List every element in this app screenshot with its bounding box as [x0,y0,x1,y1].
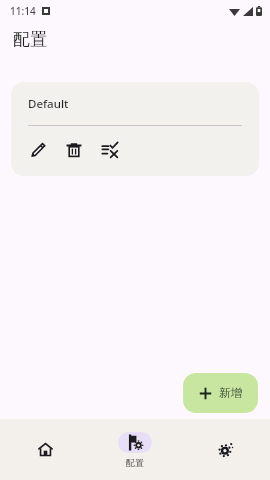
button[interactable]: Settings [180,439,270,460]
staticText: 配置 [13,29,47,50]
button[interactable]: Delete [61,137,87,163]
button[interactable]: 配置 [90,432,180,468]
button[interactable]: Default [11,82,259,176]
button[interactable]: Rules [97,137,123,163]
staticText: Default [28,96,69,112]
staticText: 新增 [219,386,242,400]
button[interactable]: 新增 [183,373,258,413]
button[interactable]: Home [0,439,90,460]
button[interactable]: Edit [25,137,51,163]
staticText: 11:14 [10,4,36,18]
staticText: 配置 [126,457,144,468]
